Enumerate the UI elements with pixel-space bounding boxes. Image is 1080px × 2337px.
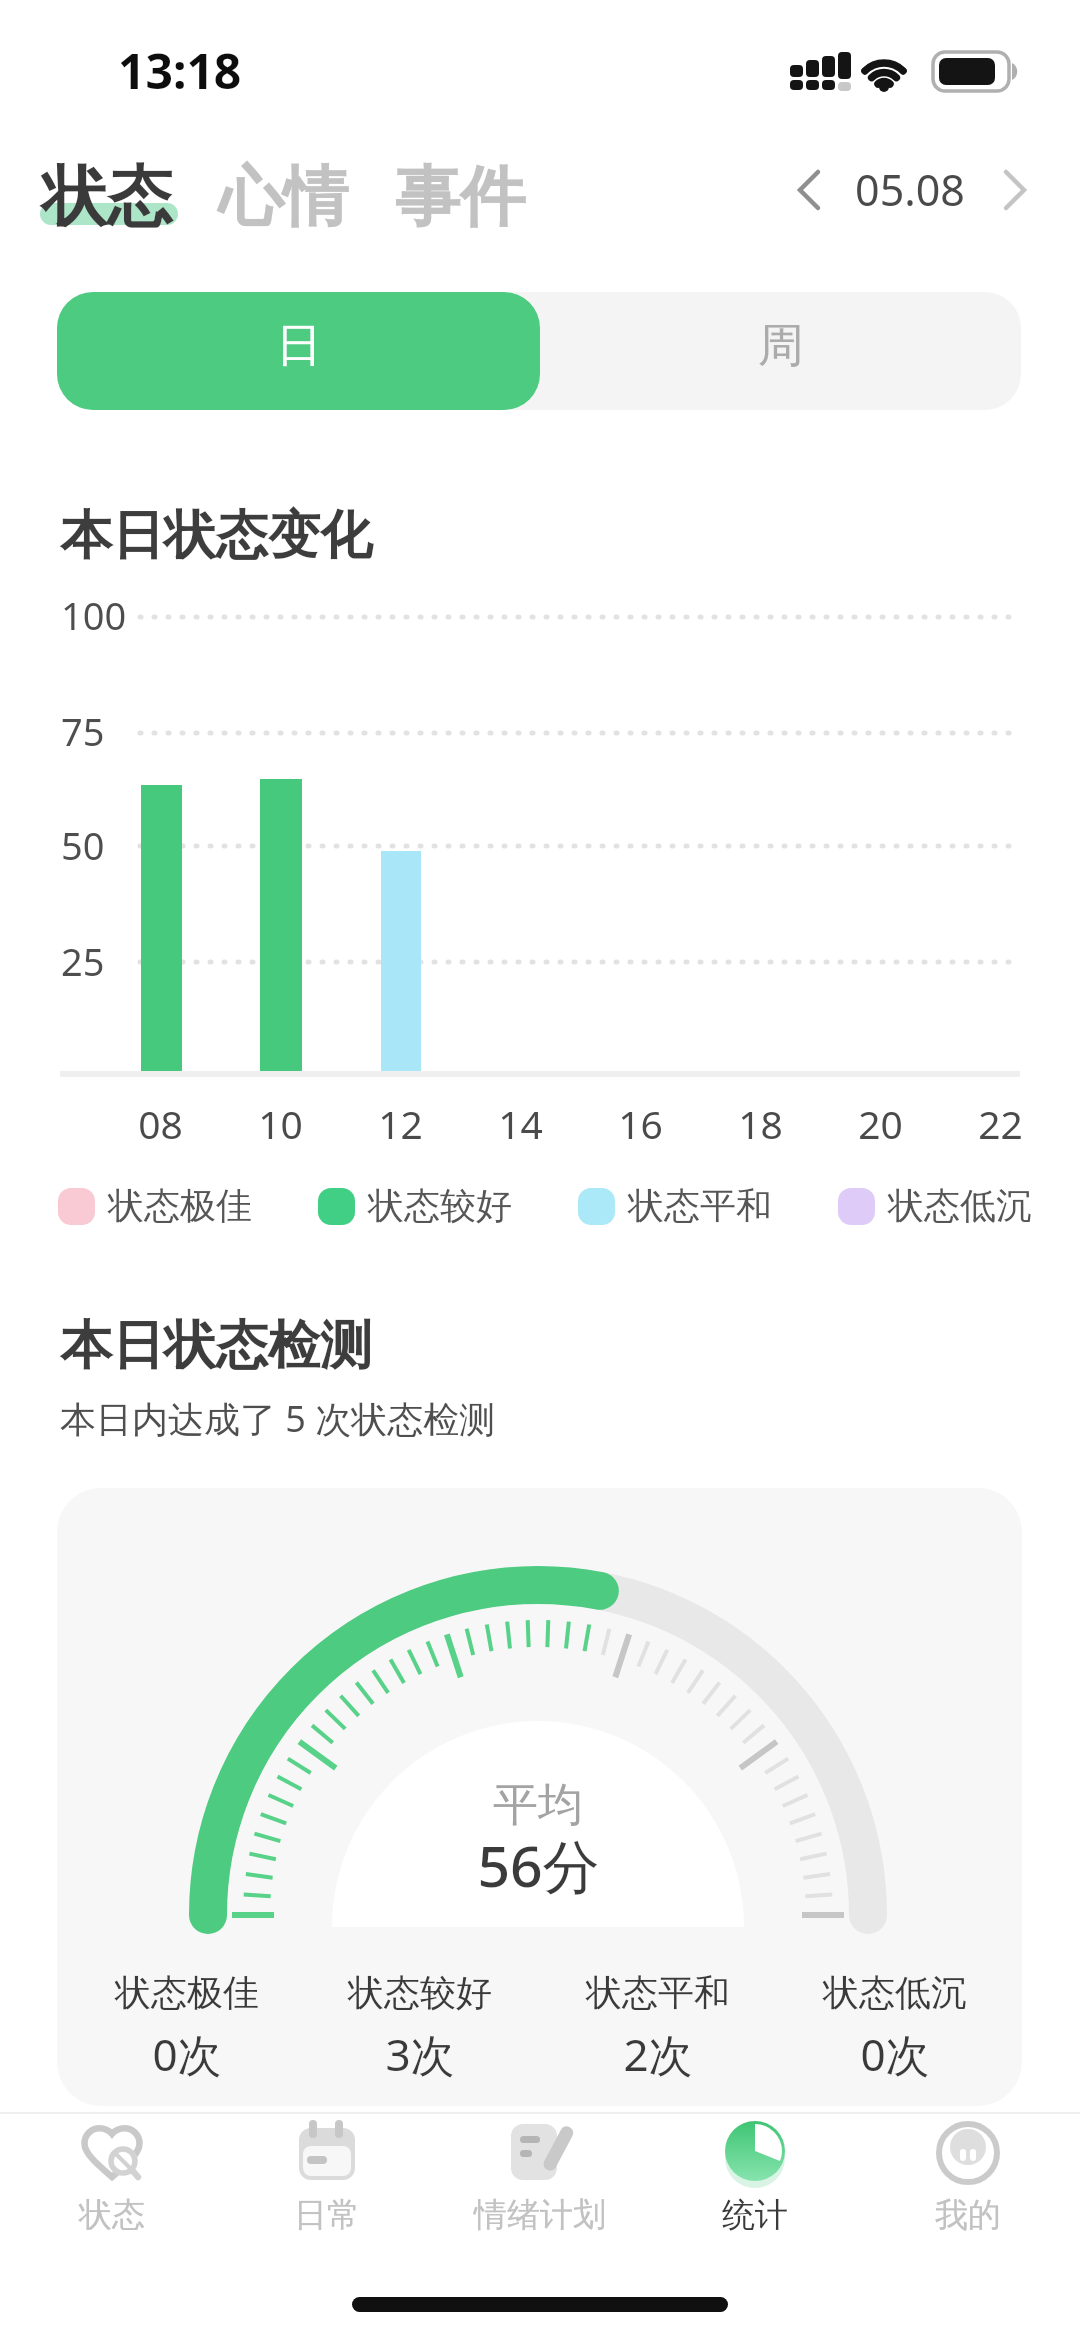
- staticText: 状态低沉: [823, 1970, 967, 2015]
- staticText: 本日状态检测: [60, 1313, 372, 1379]
- staticText: 10: [258, 1097, 303, 1150]
- button[interactable]: 统计: [650, 2120, 860, 2250]
- staticText: 本日内达成了 5 次状态检测: [60, 1394, 496, 1443]
- button[interactable]: 周: [540, 317, 1021, 375]
- staticText: 状态: [79, 2194, 145, 2236]
- button[interactable]: [992, 156, 1044, 222]
- button[interactable]: 情绪计划: [435, 2120, 645, 2250]
- staticText: 日: [276, 317, 322, 375]
- staticText: 本日状态变化: [60, 503, 372, 569]
- button[interactable]: [57, 292, 540, 410]
- button[interactable]: 心情: [218, 156, 348, 238]
- button[interactable]: [786, 156, 838, 222]
- staticText: 14: [498, 1097, 543, 1150]
- button[interactable]: 状态: [42, 156, 172, 238]
- staticText: 状态极佳: [108, 1183, 252, 1228]
- staticText: 情绪计划: [474, 2194, 606, 2236]
- staticText: 心情: [218, 156, 348, 238]
- staticText: 周: [758, 317, 804, 375]
- staticText: 状态低沉: [888, 1183, 1032, 1228]
- staticText: 05.08: [855, 160, 965, 219]
- staticText: 状态平和: [586, 1970, 730, 2015]
- staticText: 日常: [294, 2194, 360, 2236]
- staticText: 08: [138, 1097, 183, 1150]
- staticText: 75: [61, 705, 105, 757]
- staticText: 0次: [152, 2024, 222, 2084]
- staticText: 20: [858, 1097, 903, 1150]
- staticText: 状态较好: [368, 1183, 512, 1228]
- staticText: 56分: [477, 1826, 600, 1904]
- staticText: 状态极佳: [115, 1970, 259, 2015]
- staticText: 2次: [623, 2024, 693, 2084]
- staticText: 我的: [935, 2194, 1001, 2236]
- staticText: 状态较好: [348, 1970, 492, 2015]
- staticText: 统计: [722, 2194, 788, 2236]
- staticText: 0次: [860, 2024, 930, 2084]
- staticText: 12: [378, 1097, 423, 1150]
- button[interactable]: 我的: [863, 2120, 1073, 2250]
- staticText: 事件: [395, 156, 525, 238]
- staticText: 16: [618, 1097, 663, 1150]
- staticText: 25: [61, 935, 105, 987]
- staticText: 22: [978, 1097, 1023, 1150]
- staticText: 18: [738, 1097, 783, 1150]
- staticText: 13:18: [118, 38, 242, 103]
- staticText: 状态平和: [628, 1183, 772, 1228]
- button[interactable]: 日常: [222, 2120, 432, 2250]
- button[interactable]: [57, 292, 1021, 410]
- staticText: 3次: [385, 2024, 455, 2084]
- staticText: 平均: [493, 1777, 583, 1834]
- staticText: 50: [61, 819, 105, 871]
- button[interactable]: 事件: [395, 156, 525, 238]
- staticText: 100: [61, 589, 127, 641]
- staticText: 状态: [42, 156, 172, 238]
- button[interactable]: 状态: [7, 2120, 217, 2250]
